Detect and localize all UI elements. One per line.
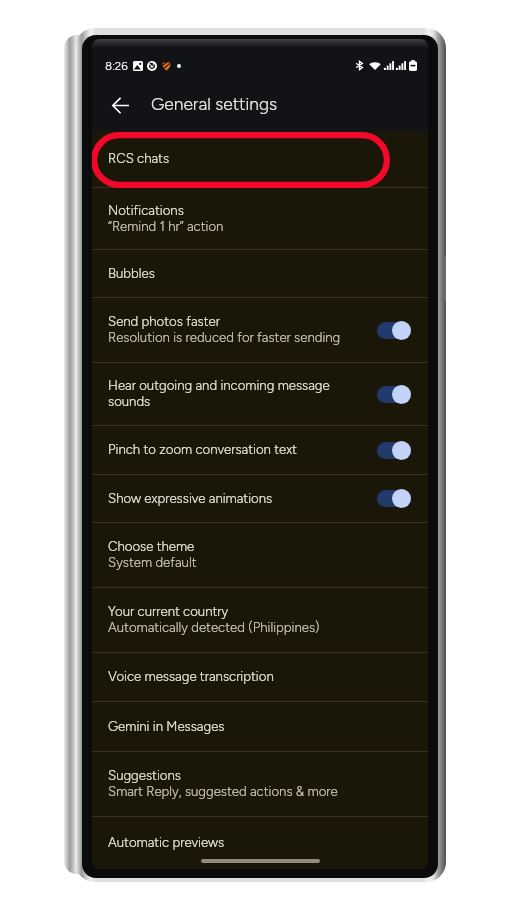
button[interactable]: Your current country: [92, 588, 428, 652]
button[interactable]: Show expressive animations: [92, 475, 428, 522]
button[interactable]: Choose theme: [92, 523, 428, 587]
staticText: RCS chats: [108, 150, 170, 166]
staticText: Resolution is reduced for faster sending: [108, 329, 341, 345]
button[interactable]: Hear outgoing and incoming message sound…: [92, 363, 428, 425]
button[interactable]: Toggle Pinch to zoom conversation text: [377, 441, 411, 460]
staticText: Hear outgoing and incoming message sound…: [108, 377, 367, 409]
staticText: Automatically detected (Philippines): [108, 619, 320, 635]
button[interactable]: Pinch to zoom conversation text: [92, 426, 428, 474]
staticText: General settings: [151, 93, 278, 114]
button[interactable]: RCS chats: [92, 131, 428, 187]
staticText: “Remind 1 hr” action: [108, 218, 224, 234]
button[interactable]: Automatic previews: [92, 817, 428, 869]
button[interactable]: Toggle Send photos faster: [377, 321, 411, 340]
staticText: Send photos faster: [108, 313, 220, 329]
staticText: 8:26: [105, 59, 128, 73]
staticText: Notifications: [108, 202, 184, 218]
staticText: Smart Reply, suggested actions & more: [108, 783, 338, 799]
button[interactable]: Notifications: [92, 188, 428, 249]
staticText: Pinch to zoom conversation text: [108, 441, 297, 457]
staticText: Gemini in Messages: [108, 718, 225, 734]
button[interactable]: Navigate up: [101, 86, 139, 124]
staticText: Choose theme: [108, 538, 195, 554]
button[interactable]: Toggle Show expressive animations: [377, 489, 411, 508]
button[interactable]: Suggestions: [92, 752, 428, 816]
staticText: Bubbles: [108, 265, 155, 281]
staticText: Automatic previews: [108, 834, 225, 850]
button[interactable]: Gemini in Messages: [92, 702, 428, 751]
button[interactable]: Voice message transcription: [92, 653, 428, 701]
staticText: Your current country: [108, 603, 229, 619]
staticText: Suggestions: [108, 767, 181, 783]
button[interactable]: Send photos faster: [92, 298, 428, 362]
staticText: Voice message transcription: [108, 668, 274, 684]
button[interactable]: Toggle Hear outgoing and incoming messag…: [377, 385, 411, 404]
staticText: Show expressive animations: [108, 490, 273, 506]
staticText: System default: [108, 554, 197, 570]
button[interactable]: Bubbles: [92, 250, 428, 297]
